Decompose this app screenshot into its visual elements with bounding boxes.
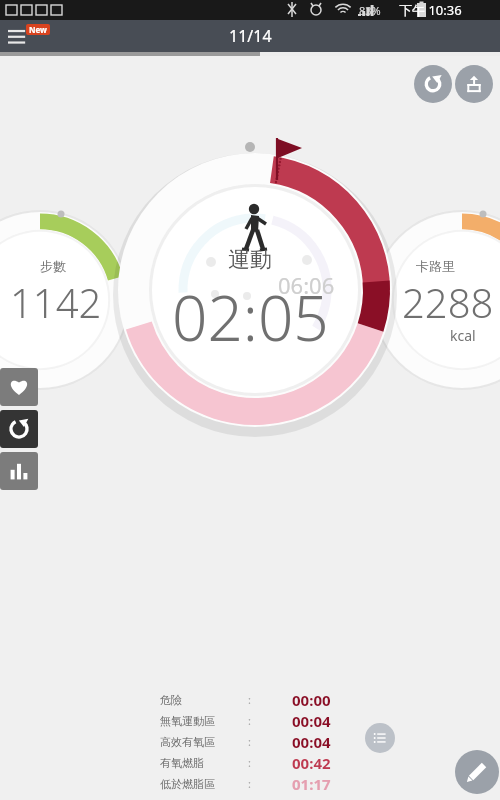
button[interactable]: Refresh xyxy=(414,65,452,103)
staticText: 02:05 xyxy=(172,275,329,359)
staticText: 有氧燃脂 xyxy=(160,756,204,770)
staticText: 危險 xyxy=(160,693,182,707)
staticText: 01:17 xyxy=(292,774,331,794)
staticText: 00:04 xyxy=(292,711,331,731)
staticText: : xyxy=(248,755,251,770)
staticText: 83% xyxy=(359,3,381,18)
staticText: New xyxy=(29,24,47,35)
button[interactable]: Restart xyxy=(0,410,38,448)
staticText: 步數 xyxy=(40,258,66,274)
staticText: 00:00 xyxy=(292,690,331,710)
staticText: : xyxy=(248,692,251,707)
staticText: 1142 xyxy=(10,275,102,329)
staticText: 低於燃脂區 xyxy=(160,777,215,791)
staticText: 2288 xyxy=(402,275,494,329)
button[interactable]: Edit xyxy=(455,750,499,794)
button[interactable]: Heart rate xyxy=(0,368,38,406)
button[interactable]: Menu xyxy=(0,20,52,52)
staticText: 下午 10:36 xyxy=(399,1,462,19)
staticText: 高效有氧區 xyxy=(160,735,215,749)
button[interactable]: Chart xyxy=(0,452,38,490)
staticText: 無氧運動區 xyxy=(160,714,215,728)
staticText: 11/14 xyxy=(229,25,272,47)
staticText: : xyxy=(248,776,251,791)
staticText: kcal xyxy=(450,326,476,345)
button[interactable]: Share xyxy=(455,65,493,103)
button[interactable]: List xyxy=(365,723,395,753)
staticText: 00:42 xyxy=(292,753,331,773)
staticText: 卡路里 xyxy=(416,258,455,274)
staticText: 運動 xyxy=(228,246,272,274)
staticText: : xyxy=(248,713,251,728)
staticText: : xyxy=(248,734,251,749)
staticText: 06:06 xyxy=(278,270,335,300)
staticText: 00:04 xyxy=(292,732,331,752)
